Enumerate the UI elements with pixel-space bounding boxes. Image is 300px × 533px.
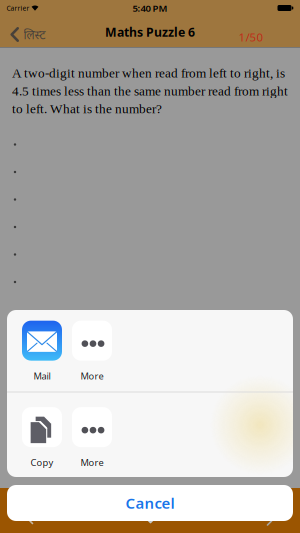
staticText: A two-digit number when read from left t… bbox=[12, 66, 288, 116]
button[interactable]: Copy bbox=[22, 407, 62, 469]
staticText: More bbox=[80, 456, 103, 469]
staticText: Carrier bbox=[6, 3, 29, 13]
button[interactable]: लिस्ट bbox=[10, 21, 45, 48]
staticText: Copy bbox=[30, 456, 53, 469]
button[interactable]: More bbox=[72, 407, 112, 469]
button[interactable]: Mail bbox=[22, 321, 62, 382]
button[interactable]: More bbox=[72, 321, 112, 382]
staticText: Maths Puzzle 6 bbox=[105, 24, 195, 40]
staticText: 1/50 bbox=[238, 29, 263, 45]
staticText: Mail bbox=[33, 370, 50, 382]
staticText: 5:40 PM bbox=[132, 1, 167, 15]
staticText: More bbox=[80, 370, 103, 382]
staticText: Cancel bbox=[125, 493, 174, 513]
button[interactable]: Cancel bbox=[7, 485, 293, 521]
staticText: लिस्ट bbox=[23, 26, 45, 43]
